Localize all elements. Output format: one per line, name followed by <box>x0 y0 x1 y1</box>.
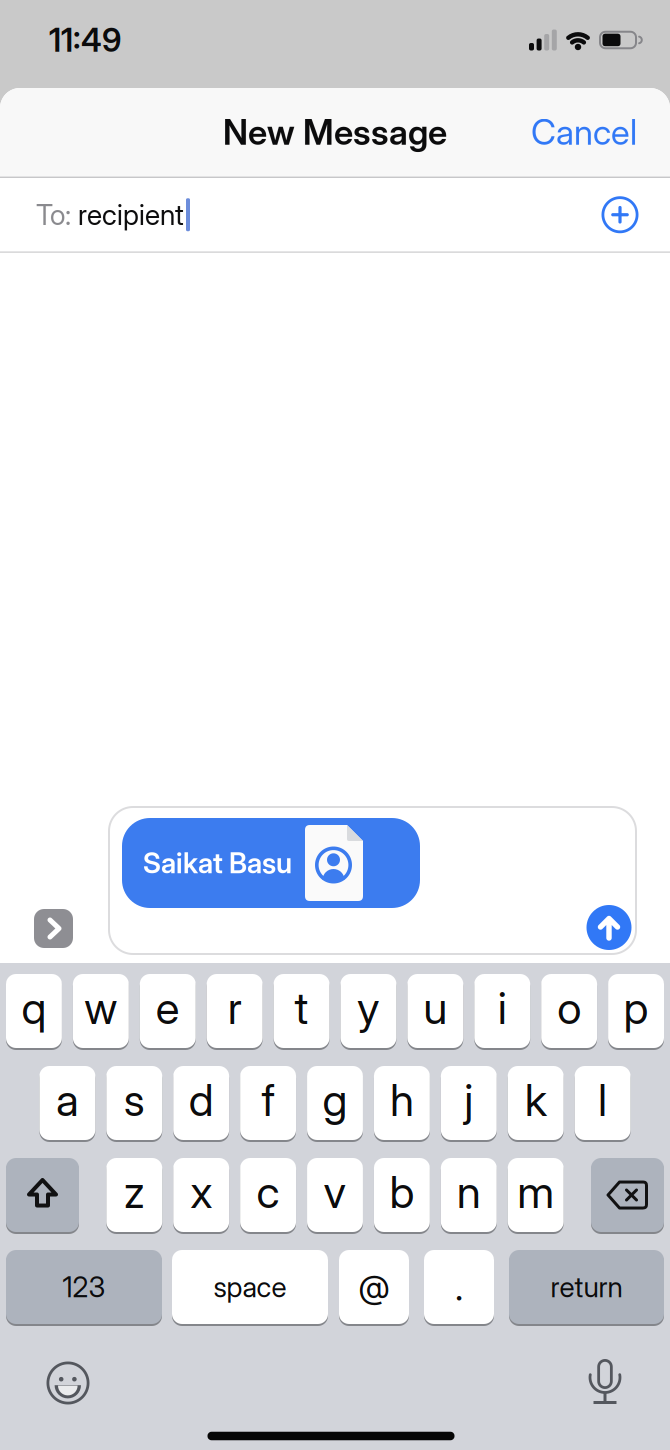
staticText: p <box>623 982 648 1034</box>
staticText: l <box>598 1074 607 1126</box>
staticText: space <box>213 1270 286 1303</box>
button[interactable]: return <box>509 1250 664 1324</box>
button[interactable]: s <box>106 1066 162 1140</box>
staticText: u <box>423 982 447 1034</box>
button[interactable]: Emoji <box>45 1360 91 1406</box>
staticText: b <box>389 1166 414 1218</box>
button[interactable]: Cancel <box>531 112 637 153</box>
button[interactable]: Add Contact <box>600 195 640 235</box>
staticText: e <box>156 982 180 1034</box>
button[interactable]: o <box>541 974 597 1048</box>
button[interactable]: k <box>508 1066 564 1140</box>
button[interactable]: b <box>374 1158 430 1232</box>
staticText: return <box>550 1270 622 1303</box>
staticText: a <box>56 1074 79 1126</box>
button[interactable]: q <box>6 974 62 1048</box>
staticText: z <box>124 1166 145 1218</box>
staticText: q <box>21 982 46 1034</box>
staticText: Saikat Basu <box>143 846 292 879</box>
button[interactable]: i <box>474 974 530 1048</box>
button[interactable]: Shift <box>6 1158 79 1232</box>
button[interactable]: t <box>274 974 329 1048</box>
staticText: d <box>189 1074 214 1126</box>
staticText: y <box>357 982 380 1034</box>
staticText: k <box>525 1074 547 1126</box>
staticText: Cancel <box>531 112 637 153</box>
button[interactable]: x <box>173 1158 229 1232</box>
button[interactable]: Expand <box>34 909 73 948</box>
staticText: i <box>498 982 507 1034</box>
button[interactable]: y <box>340 974 396 1048</box>
button[interactable]: g <box>307 1066 363 1140</box>
button[interactable]: z <box>106 1158 162 1232</box>
button[interactable]: Send <box>586 905 631 950</box>
button[interactable]: e <box>140 974 196 1048</box>
staticText: To: <box>36 198 78 231</box>
button[interactable]: n <box>441 1158 497 1232</box>
button[interactable]: r <box>207 974 263 1048</box>
staticText: j <box>464 1074 473 1126</box>
button[interactable]: space <box>172 1250 328 1324</box>
button[interactable]: c <box>240 1158 296 1232</box>
staticText: f <box>262 1074 275 1126</box>
button[interactable]: d <box>173 1066 229 1140</box>
button[interactable]: u <box>407 974 463 1048</box>
button[interactable]: Saikat Basu <box>122 818 420 908</box>
button[interactable]: @ <box>339 1250 409 1324</box>
staticText: . <box>455 1265 463 1309</box>
staticText: @ <box>358 1268 389 1306</box>
button[interactable]: 123 <box>6 1250 162 1324</box>
button[interactable]: j <box>441 1066 497 1140</box>
button[interactable]: v <box>307 1158 363 1232</box>
staticText: g <box>322 1074 347 1126</box>
button[interactable]: m <box>508 1158 564 1232</box>
staticText: r <box>228 982 242 1034</box>
staticText: recipient <box>78 198 184 231</box>
staticText: m <box>517 1166 554 1218</box>
button[interactable]: f <box>240 1066 296 1140</box>
staticText: o <box>557 982 581 1034</box>
button[interactable]: Dictation <box>590 1358 620 1406</box>
button[interactable]: p <box>608 974 664 1048</box>
button[interactable]: h <box>374 1066 430 1140</box>
staticText: 11:49 <box>49 21 121 59</box>
staticText: 123 <box>62 1270 105 1303</box>
staticText: s <box>124 1074 145 1126</box>
staticText: c <box>257 1166 280 1218</box>
staticText: x <box>190 1166 212 1218</box>
staticText: h <box>390 1074 414 1126</box>
staticText: n <box>457 1166 481 1218</box>
staticText: New Message <box>223 112 447 153</box>
staticText: v <box>323 1166 346 1218</box>
button[interactable]: l <box>575 1066 630 1140</box>
staticText: t <box>295 982 309 1034</box>
staticText: w <box>84 982 117 1034</box>
button[interactable]: a <box>39 1066 95 1140</box>
button[interactable]: Delete <box>591 1158 664 1232</box>
button[interactable]: w <box>73 974 129 1048</box>
button[interactable]: . <box>424 1250 494 1324</box>
